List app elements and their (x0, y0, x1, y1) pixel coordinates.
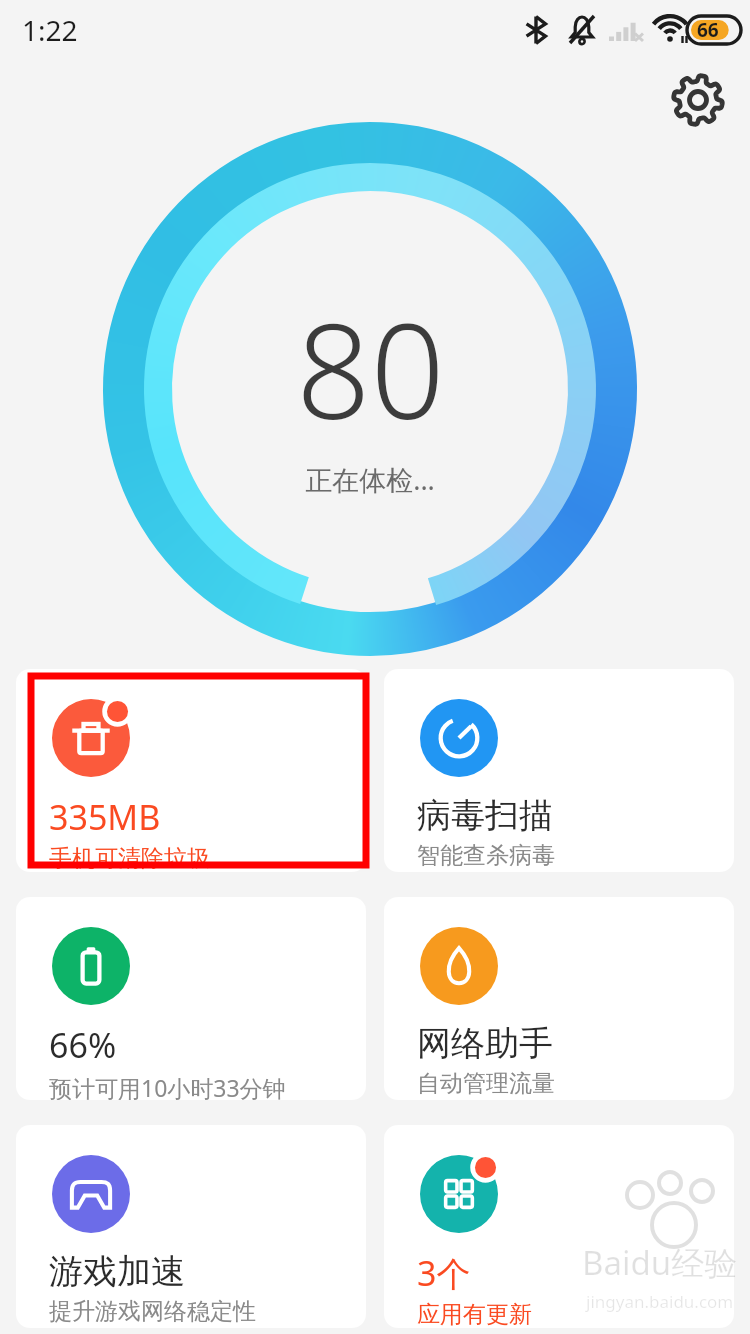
staticText: 智能查杀病毒 (417, 841, 555, 870)
staticText: jingyan.baidu.com (586, 1290, 734, 1313)
button[interactable]: Settings (662, 64, 734, 136)
staticText: Baidu经验 (582, 1240, 738, 1285)
staticText: 66 (697, 17, 719, 43)
staticText: 335MB (49, 794, 161, 840)
staticText: 病毒扫描 (417, 794, 553, 837)
staticText: 自动管理流量 (417, 1069, 555, 1098)
staticText: 80 (296, 280, 445, 457)
staticText: 正在体检... (305, 461, 435, 498)
staticText: 网络助手 (417, 1022, 553, 1065)
staticText: 66% (49, 1022, 117, 1068)
staticText: 预计可用10小时33分钟 (49, 1072, 286, 1100)
button[interactable]: 335MB (16, 669, 366, 872)
button[interactable]: 游戏加速 (16, 1125, 366, 1328)
staticText: 提升游戏网络稳定性 (49, 1297, 256, 1326)
staticText: 3个 (417, 1250, 471, 1296)
button[interactable]: 病毒扫描 (384, 669, 734, 872)
button[interactable]: 网络助手 (384, 897, 734, 1100)
button[interactable]: 66% (16, 897, 366, 1100)
button[interactable]: 3个 (384, 1125, 734, 1328)
staticText: 1:22 (22, 11, 78, 49)
staticText: 游戏加速 (49, 1250, 185, 1293)
staticText: 应用有更新 (417, 1300, 532, 1328)
staticText: 手机可清除垃圾 (49, 844, 210, 872)
